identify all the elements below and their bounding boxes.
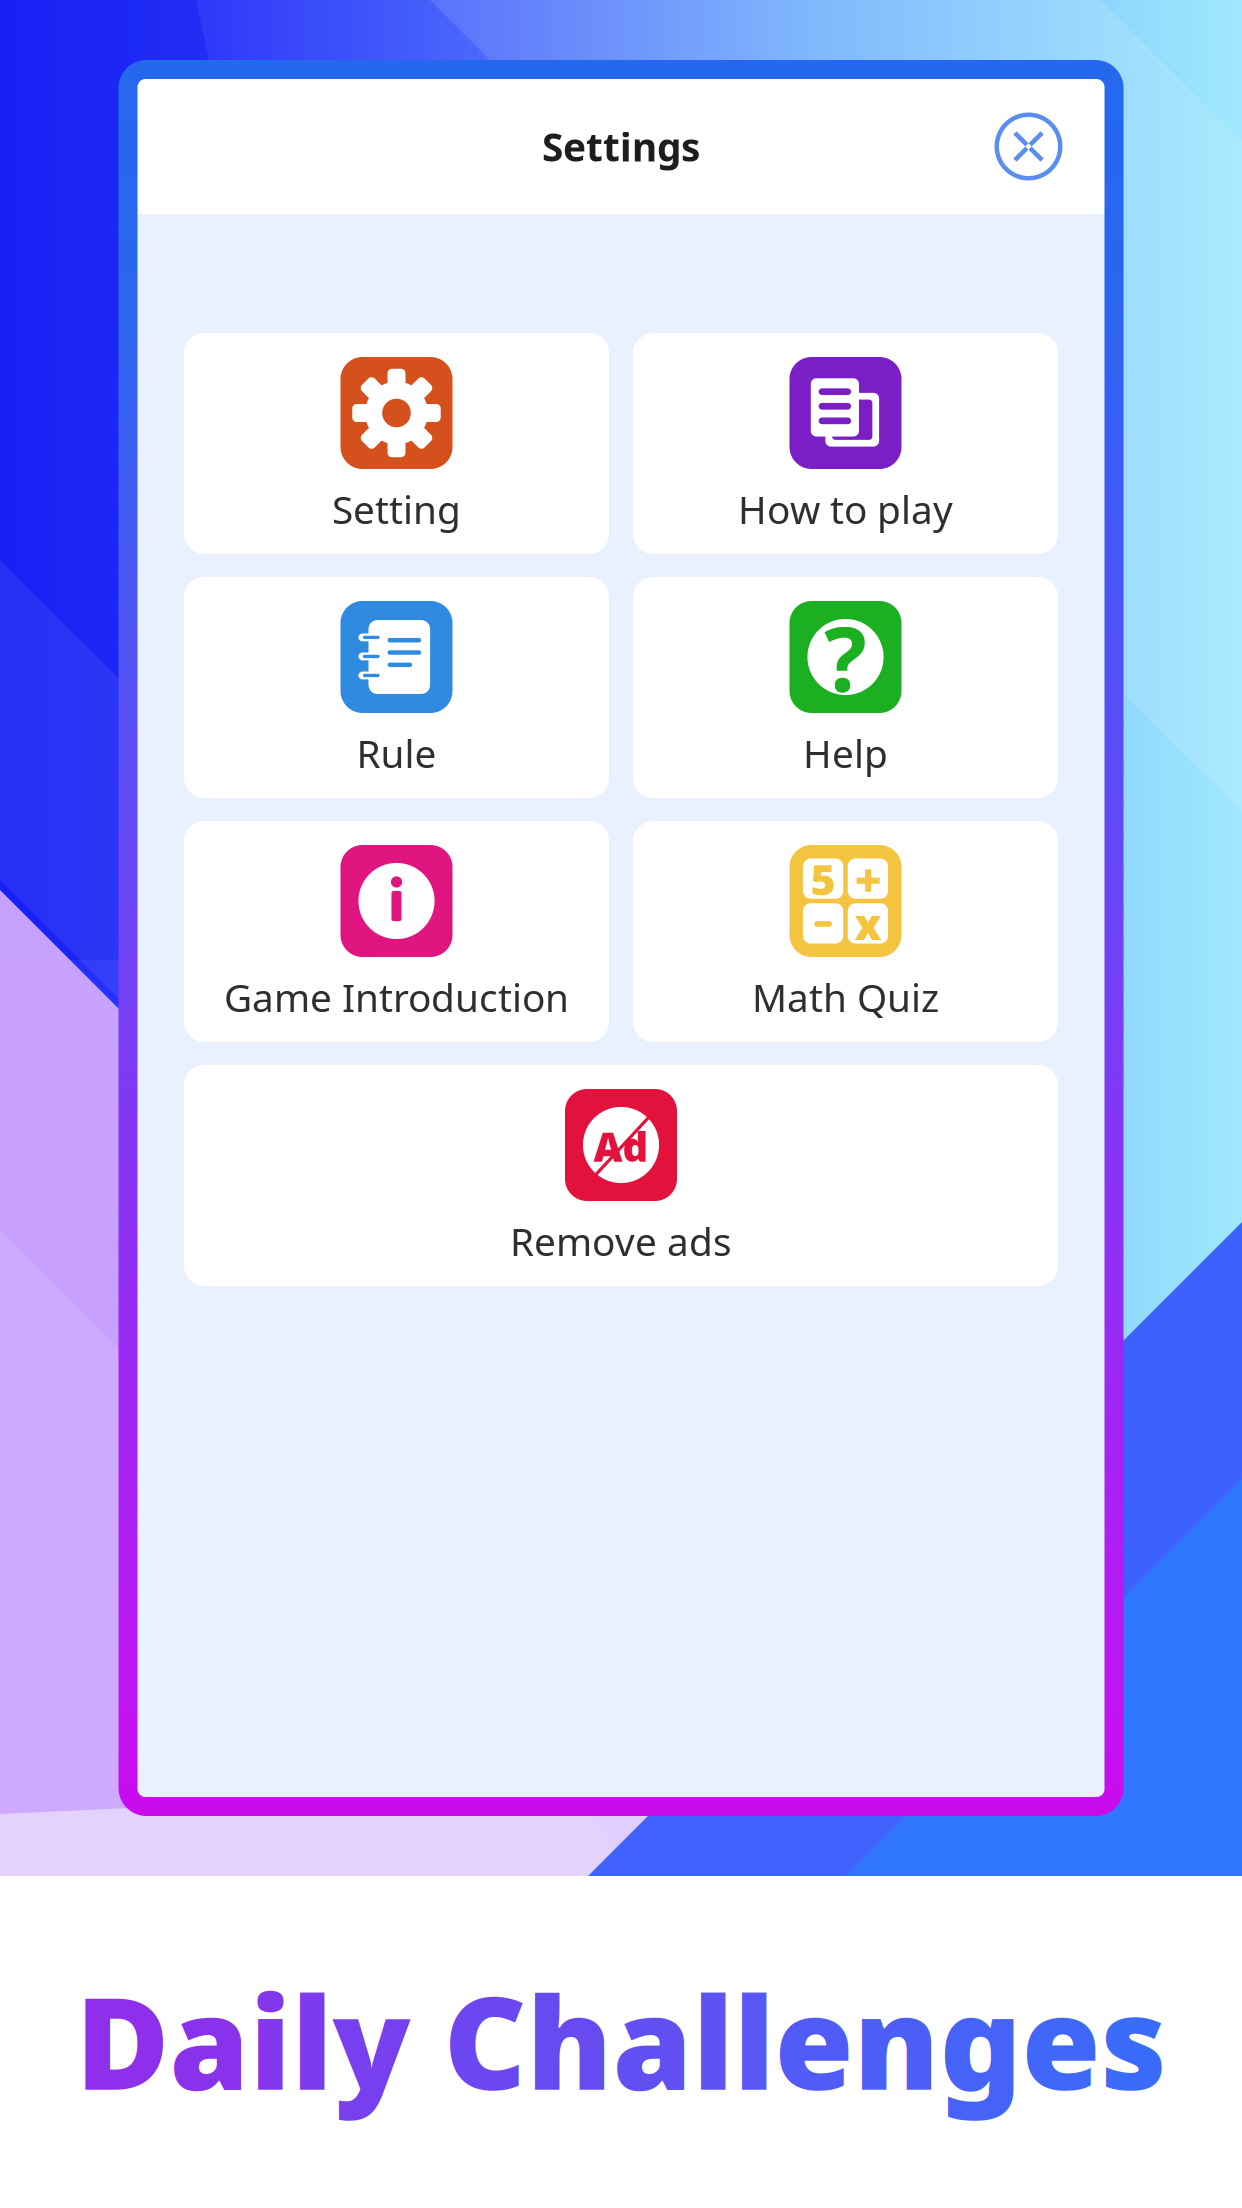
staticText: g [939, 1955, 1021, 2125]
staticText: a [612, 1955, 692, 2125]
staticText: l [733, 1955, 774, 2125]
staticText: l [291, 1955, 332, 2125]
button[interactable]: Rule [184, 577, 609, 798]
staticText: x [854, 895, 881, 952]
staticText: i [249, 1955, 291, 2125]
staticText: ? [824, 598, 867, 716]
staticText: Game Introduction [224, 971, 569, 1023]
staticText: How to play [738, 483, 953, 535]
staticText: Settings [542, 121, 700, 172]
staticText: Remove ads [510, 1215, 732, 1267]
staticText: a [169, 1955, 249, 2125]
staticText: D [75, 1955, 169, 2125]
button[interactable]: ? [633, 577, 1058, 798]
staticText: s [1100, 1955, 1166, 2125]
staticText: Rule [356, 727, 436, 779]
staticText: Ad [593, 1120, 648, 1173]
staticText: C [443, 1955, 526, 2125]
staticText: Setting [332, 483, 461, 535]
staticText: h [526, 1955, 612, 2125]
button[interactable]: Ad [184, 1065, 1058, 1286]
button[interactable]: Setting [184, 333, 609, 554]
staticText: Help [803, 727, 888, 779]
staticText: e [774, 1955, 853, 2125]
staticText: 5 [811, 850, 836, 907]
staticText: n [853, 1955, 939, 2125]
button[interactable]: How to play [633, 333, 1058, 554]
staticText: + [854, 848, 881, 910]
button[interactable]: Close [985, 103, 1071, 189]
staticText: y [332, 1955, 410, 2125]
button[interactable]: 5 [633, 821, 1058, 1042]
button[interactable]: Game Introduction [184, 821, 609, 1042]
staticText: e [1021, 1955, 1100, 2125]
staticText: Math Quiz [752, 971, 939, 1023]
staticText: l [692, 1955, 733, 2125]
